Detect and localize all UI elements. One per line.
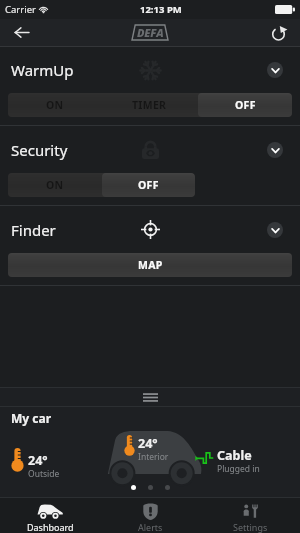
staticText: 12:13 PM (140, 3, 182, 16)
button[interactable]: Expand Finder (267, 222, 283, 238)
button[interactable]: ON (8, 173, 101, 197)
staticText: Outside (28, 468, 60, 480)
staticText: Security (11, 140, 68, 160)
button[interactable]: OFF (101, 173, 195, 197)
staticText: Carrier (5, 3, 36, 16)
button[interactable]: Expand panel (0, 388, 300, 406)
button[interactable]: Refresh (258, 19, 300, 46)
staticText: Alerts (138, 521, 163, 533)
button[interactable]: Settings (200, 498, 300, 533)
staticText: My car (11, 410, 52, 426)
button[interactable]: OFF (197, 93, 292, 117)
staticText: Finder (11, 220, 56, 240)
staticText: Cable (217, 447, 252, 464)
button[interactable]: Dashboard (0, 498, 100, 533)
staticText: DEFA (137, 25, 164, 40)
staticText: Dashboard (27, 521, 74, 533)
button[interactable]: MAP (8, 253, 292, 277)
staticText: 24° (28, 452, 48, 469)
staticText: MAP (138, 258, 163, 272)
button[interactable]: TIMER (102, 93, 197, 117)
staticText: 24° (138, 435, 158, 452)
staticText: Plugged in (217, 463, 260, 475)
button[interactable]: Expand WarmUp (267, 62, 283, 78)
staticText: Interior (138, 451, 169, 463)
staticText: ON (46, 98, 64, 112)
staticText: TIMER (132, 98, 167, 112)
button[interactable]: Alerts (100, 498, 200, 533)
staticText: OFF (235, 98, 256, 112)
button[interactable]: Back (0, 19, 42, 46)
staticText: ON (46, 178, 64, 192)
staticText: OFF (138, 178, 159, 192)
button[interactable]: ON (8, 93, 102, 117)
staticText: Settings (233, 521, 268, 533)
button[interactable]: Expand Security (267, 142, 283, 158)
staticText: WarmUp (11, 60, 74, 80)
